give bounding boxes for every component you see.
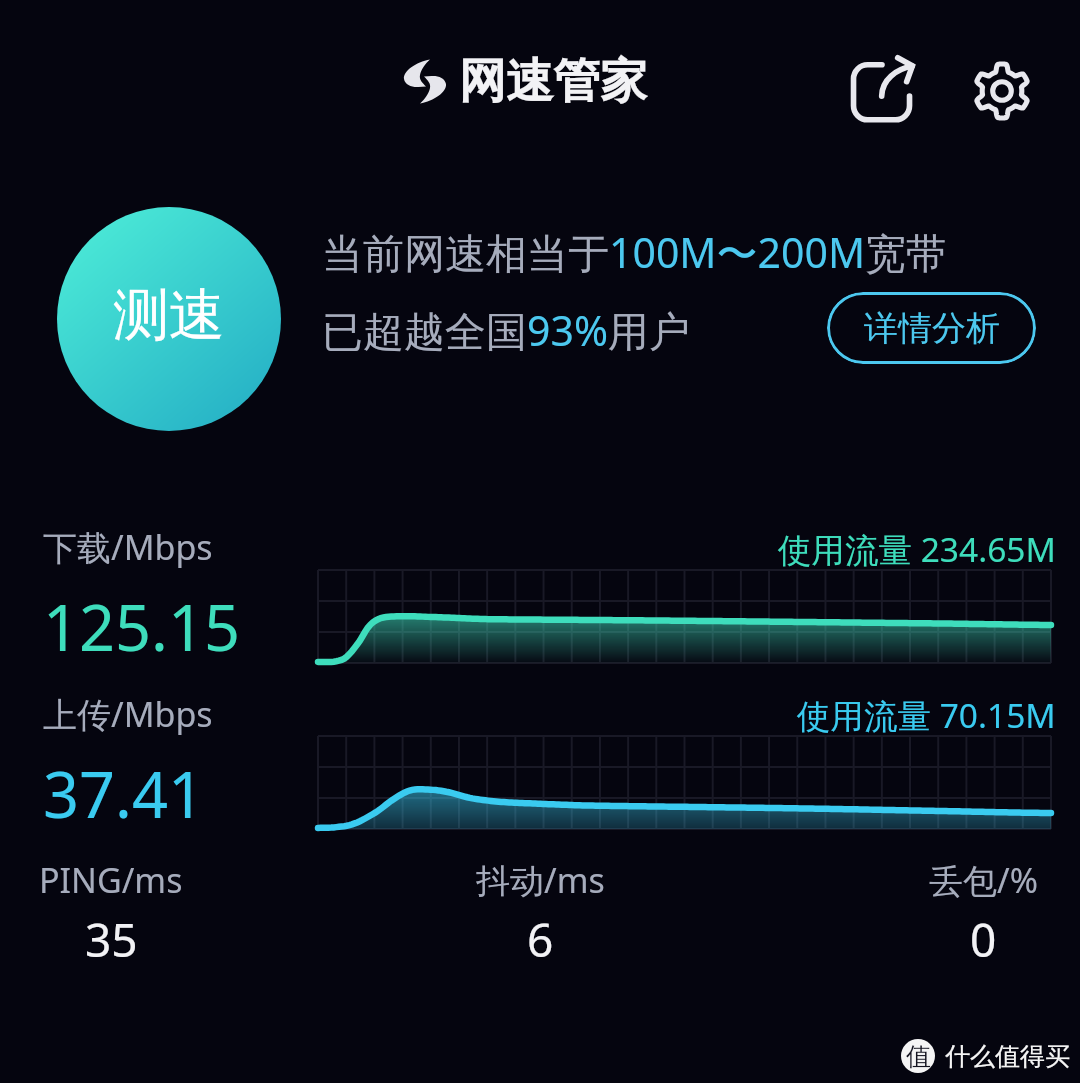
staticText: 丢包/% — [929, 857, 1038, 903]
staticText: 测速 — [113, 280, 225, 351]
staticText: 下载/Mbps — [43, 524, 213, 570]
staticText: 详情分析 — [864, 307, 1000, 350]
staticText: 已超越全国93%用户 — [322, 302, 690, 358]
staticText: 6 — [527, 908, 554, 971]
staticText: 0 — [970, 908, 997, 971]
staticText: 上传/Mbps — [43, 691, 213, 737]
staticText: 抖动/ms — [476, 857, 605, 903]
staticText: 35 — [85, 908, 138, 971]
staticText: 值 — [906, 1041, 931, 1072]
button[interactable]: 测速 — [57, 207, 281, 431]
staticText: 使用流量 70.15M — [797, 692, 1056, 738]
staticText: 网速管家 — [459, 52, 647, 111]
button[interactable]: Settings — [955, 44, 1049, 138]
staticText: 使用流量 234.65M — [778, 526, 1056, 572]
staticText: 125.15 — [43, 584, 241, 670]
button[interactable]: 详情分析 — [827, 292, 1036, 364]
staticText: 什么值得买 — [945, 1041, 1070, 1072]
staticText: 当前网速相当于100M〜200M宽带 — [322, 224, 948, 280]
staticText: 37.41 — [43, 751, 205, 837]
staticText: PING/ms — [39, 857, 183, 903]
button[interactable]: Share — [835, 44, 929, 138]
